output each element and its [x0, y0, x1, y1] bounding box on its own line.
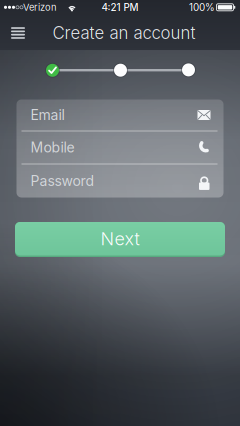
- button[interactable]: Password: [16, 164, 223, 197]
- staticText: Verizon: [23, 2, 57, 13]
- staticText: Email: [30, 106, 64, 123]
- button[interactable]: Menu: [6, 22, 30, 44]
- button[interactable]: Email: [16, 99, 223, 130]
- button[interactable]: Next: [15, 222, 225, 257]
- staticText: Password: [30, 172, 94, 189]
- staticText: 100%: [189, 1, 215, 13]
- staticText: Mobile: [30, 139, 74, 156]
- staticText: 4:21 PM: [101, 1, 138, 13]
- staticText: Next: [100, 228, 139, 249]
- button[interactable]: Mobile: [16, 131, 223, 163]
- staticText: Create an account: [52, 23, 195, 43]
